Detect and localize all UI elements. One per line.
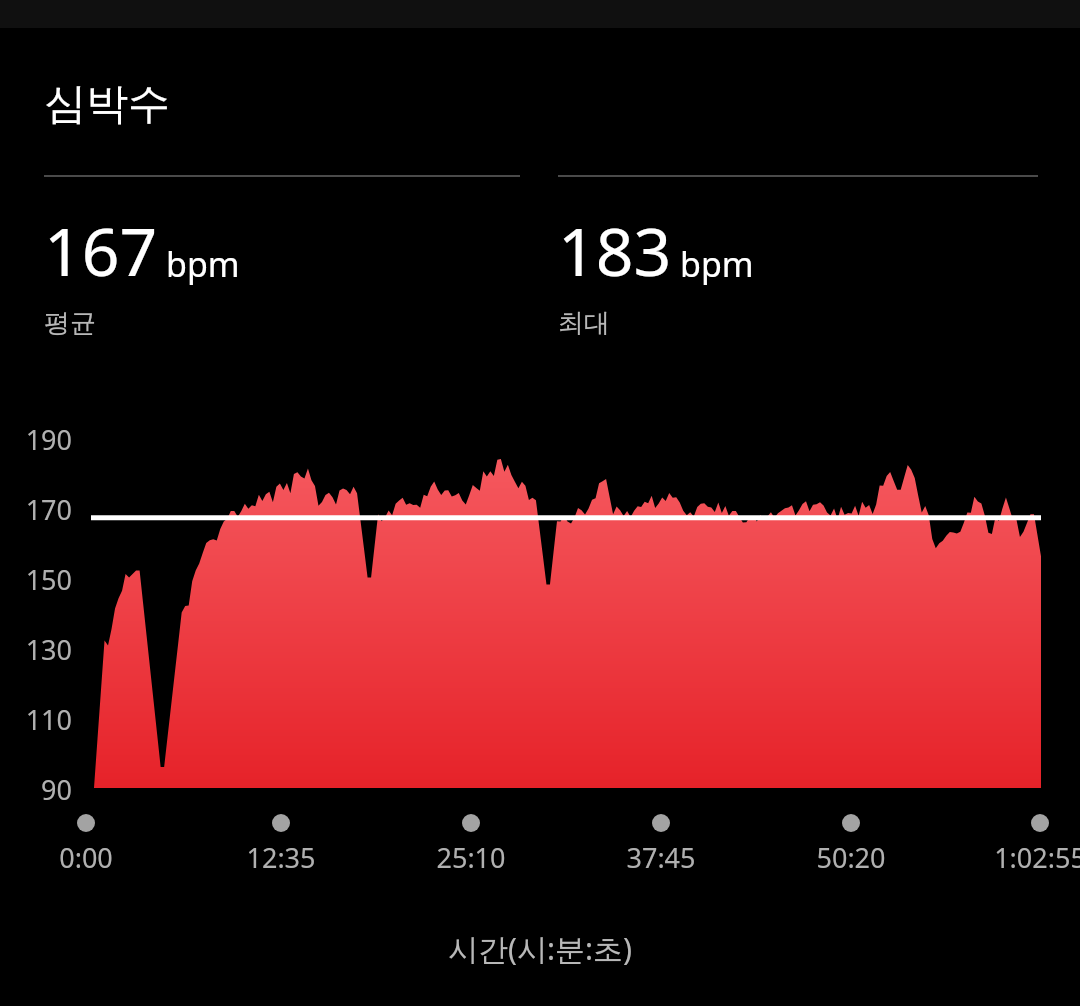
staticText: bpm xyxy=(166,241,240,287)
staticText: 50:20 xyxy=(751,839,951,876)
staticText: 1:02:55 xyxy=(940,839,1080,876)
staticText: 183 xyxy=(558,205,672,295)
staticText: 150 xyxy=(0,561,72,598)
staticText: 110 xyxy=(0,701,72,738)
staticText: bpm xyxy=(680,241,754,287)
staticText: 12:35 xyxy=(181,839,381,876)
staticText: 90 xyxy=(0,771,72,808)
staticText: 37:45 xyxy=(561,839,761,876)
staticText: 190 xyxy=(0,421,72,458)
staticText: 130 xyxy=(0,631,72,668)
staticText: 최대 xyxy=(558,307,610,340)
staticText: 0:00 xyxy=(0,839,186,876)
staticText: 시간(시:분:초) xyxy=(0,928,1080,969)
staticText: 167 xyxy=(44,205,158,295)
staticText: 25:10 xyxy=(371,839,571,876)
staticText: 170 xyxy=(0,491,72,528)
staticText: 심박수 xyxy=(44,78,170,131)
staticText: 평균 xyxy=(44,307,96,340)
button[interactable]: 183 xyxy=(558,205,1038,340)
button[interactable]: 167 xyxy=(44,205,558,340)
button[interactable]: Heart rate chart xyxy=(0,402,1080,832)
